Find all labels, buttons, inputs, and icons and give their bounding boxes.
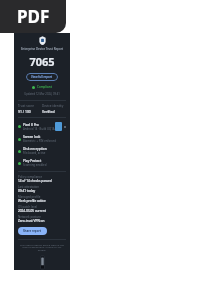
staticText: Verified [42, 109, 55, 114]
staticText: 7065 [29, 54, 55, 69]
staticText: 91 / 100 [18, 109, 31, 114]
staticText: Compliant [37, 85, 52, 89]
staticText: Last attestation [18, 185, 40, 189]
button[interactable]: Managed profile [18, 194, 66, 204]
staticText: Updated 12 Mar 2024, 09:41 [24, 92, 60, 96]
staticText: 09:41 today [18, 189, 36, 193]
staticText: Android 14 · Build UQ1A [23, 127, 55, 131]
button[interactable]: Pixel 8 Pro [18, 120, 66, 133]
staticText: File-based, active [23, 151, 46, 155]
staticText: Network posture [18, 215, 41, 219]
button[interactable]: Policy compliance [18, 174, 66, 184]
staticText: Screen lock [23, 135, 41, 139]
staticText: This report reflects device state at the… [18, 243, 66, 252]
button[interactable]: Share report [18, 227, 47, 235]
staticText: Play Protect [23, 159, 42, 163]
button[interactable]: Last attestation [18, 184, 66, 194]
staticText: Work profile active [18, 199, 46, 203]
staticText: Enterprise Device Trust Report [18, 47, 66, 51]
button[interactable]: OS patch level [18, 204, 66, 214]
button[interactable]: Disk encryption [18, 145, 66, 157]
staticText: Trust score [18, 104, 34, 108]
staticText: View full report [31, 75, 53, 79]
staticText: 14 of 14 checks passed [18, 179, 52, 183]
staticText: Zero-trust VPN on [18, 219, 45, 223]
staticText: Disk encryption [23, 147, 47, 151]
button[interactable]: Screen lock [18, 133, 66, 145]
staticText: Pixel 8 Pro [23, 123, 39, 127]
button[interactable]: View full report [26, 73, 58, 81]
staticText: Share report [23, 229, 42, 233]
staticText: Biometric + PIN enforced [23, 139, 56, 143]
button[interactable]: Network posture [18, 214, 66, 224]
staticText: Device identity [42, 104, 64, 108]
staticText: Managed profile [18, 195, 41, 199]
staticText: PDF [17, 5, 50, 28]
staticText: Policy compliance [18, 175, 43, 179]
staticText: OS patch level [18, 205, 38, 209]
staticText: Scanning enabled [23, 163, 47, 167]
staticText: 2024-03-05 current [18, 209, 46, 213]
button[interactable]: PDF document [0, 0, 66, 33]
button[interactable]: Play Protect [18, 157, 66, 169]
